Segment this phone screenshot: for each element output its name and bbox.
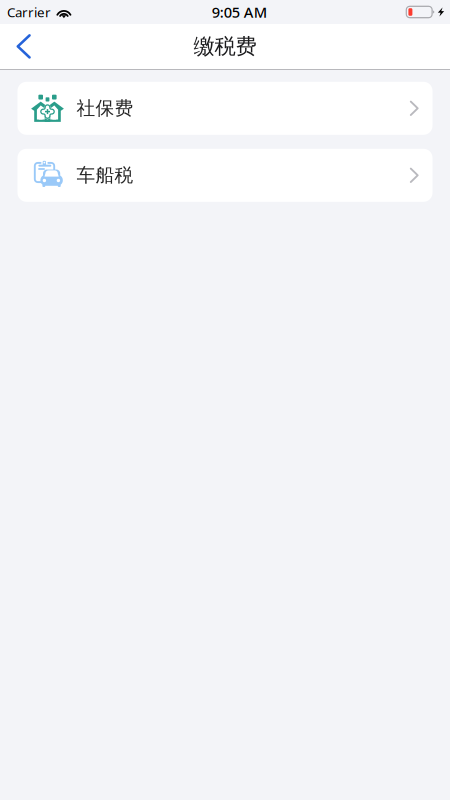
button[interactable]: Back [0,25,46,68]
button[interactable]: 车船税 [17,149,432,202]
staticText: 缴税费 [193,33,256,60]
staticText: Carrier [7,3,51,21]
staticText: 9:05 AM [212,2,267,22]
staticText: 社保费 [76,97,133,120]
staticText: 车船税 [76,164,133,187]
button[interactable]: 社保费 [17,82,432,135]
